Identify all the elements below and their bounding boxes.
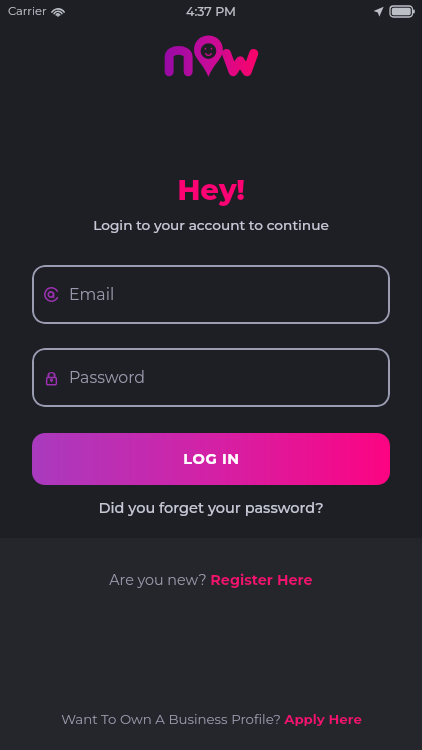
staticText: Login to your account to continue	[93, 217, 329, 234]
staticText: Are you new?	[109, 571, 207, 588]
staticText: Carrier	[8, 4, 47, 18]
staticText: Apply Here	[284, 711, 362, 727]
staticText: LOG IN	[183, 450, 240, 468]
other: now logo	[161, 35, 261, 79]
staticText: Hey!	[177, 172, 245, 207]
button[interactable]: Did you forget your password?	[92, 496, 330, 520]
staticText: Did you forget your password?	[98, 499, 324, 517]
other: Email	[44, 287, 59, 302]
other: Password	[44, 370, 59, 385]
button[interactable]: Email	[32, 265, 390, 324]
button[interactable]: LOG IN	[32, 433, 390, 485]
staticText: Password	[69, 368, 146, 387]
staticText: Register Here	[210, 571, 313, 588]
button[interactable]: Apply Here	[284, 711, 362, 727]
staticText: 4:37 PM	[186, 4, 236, 19]
button[interactable]: Register Here	[210, 571, 313, 588]
staticText: Email	[69, 285, 115, 304]
button[interactable]: Password	[32, 348, 390, 407]
staticText: Want To Own A Business Profile?	[61, 711, 281, 727]
